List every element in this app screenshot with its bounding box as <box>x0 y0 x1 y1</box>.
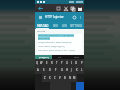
button[interactable]: G <box>59 66 64 74</box>
staticText: D <box>49 68 51 72</box>
button[interactable]: B <box>62 74 67 82</box>
staticText: HTTP Injector <box>45 15 64 19</box>
staticText: U <box>66 61 68 65</box>
staticText: H <box>66 68 68 72</box>
button[interactable]: R <box>49 59 54 66</box>
staticText: X <box>49 76 51 80</box>
button[interactable]: D <box>47 66 53 74</box>
staticText: [crlf][crlf] <box>39 56 49 59</box>
staticText: G <box>61 68 63 72</box>
button[interactable]: L <box>79 66 84 74</box>
button[interactable]: Help <box>71 14 77 20</box>
button[interactable]: Y <box>59 59 64 66</box>
staticText: T <box>56 61 58 65</box>
button[interactable]: Z <box>42 74 47 82</box>
staticText: A <box>37 68 39 72</box>
staticText: L <box>81 68 83 72</box>
button[interactable]: W <box>39 59 44 66</box>
button[interactable]: [crlf][crlf] <box>35 55 52 59</box>
button[interactable]: V <box>57 74 62 82</box>
staticText: [host_port] <box>38 37 50 40</box>
button[interactable]: A <box>35 66 41 74</box>
button[interactable]: T <box>54 59 59 66</box>
staticText: E <box>46 61 48 65</box>
button[interactable]: SSH <box>51 22 60 29</box>
staticText: Z <box>44 76 46 80</box>
staticText: LOG <box>62 24 68 28</box>
button[interactable]: S <box>41 66 47 74</box>
button[interactable]: J <box>69 66 74 74</box>
staticText: Payload <box>37 30 46 33</box>
button[interactable]: Select all <box>56 6 61 11</box>
staticText: S <box>43 68 45 72</box>
staticText: K <box>76 68 78 72</box>
staticText: C <box>54 76 56 80</box>
button[interactable]: Cut <box>63 6 68 11</box>
staticText: P <box>81 61 83 65</box>
button[interactable]: PAYLOAD <box>35 22 51 29</box>
staticText: crlf <box>58 56 62 59</box>
button[interactable]: C <box>52 74 57 82</box>
button[interactable]: K <box>74 66 79 74</box>
staticText: CONNECT [host_port] HTTP/1.1[crlf] <box>38 49 75 52</box>
staticText: Q <box>36 61 39 65</box>
button[interactable]: Copy <box>70 6 75 11</box>
staticText: B <box>64 76 66 80</box>
button[interactable]: U <box>64 59 69 66</box>
button[interactable]: Paste <box>77 6 82 11</box>
staticText: Host <box>74 56 79 59</box>
button[interactable]: H <box>64 66 69 74</box>
staticText: User-Agent: [ua][crlf][crlf] <box>38 45 65 48</box>
button[interactable]: M <box>72 74 77 82</box>
button[interactable]: X <box>47 74 52 82</box>
button[interactable]: I <box>69 59 74 66</box>
staticText: R <box>51 61 53 65</box>
button[interactable]: GET [host_port] HTTP/1.1[crlf]Host: <box>37 34 82 54</box>
button[interactable]: Menu <box>38 15 43 20</box>
staticText: I <box>71 61 72 65</box>
staticText: PAYLOAD <box>37 24 49 28</box>
staticText: [crlf]Connection: Keep-Alive[crlf] <box>38 41 72 44</box>
staticText: Y <box>61 61 63 65</box>
button[interactable]: O <box>74 59 79 66</box>
staticText: F <box>55 68 57 72</box>
button[interactable]: Back <box>37 5 43 11</box>
button[interactable]: LOG <box>60 22 69 29</box>
staticText: SETTINGS <box>70 24 83 28</box>
staticText: GET [host_port] HTTP/1.1[crlf]Host: <box>38 34 74 37</box>
button[interactable]: crlf <box>52 55 68 59</box>
staticText: J <box>71 68 72 72</box>
button[interactable] <box>76 82 84 90</box>
staticText: M <box>73 76 76 80</box>
button[interactable]: E <box>44 59 49 66</box>
button[interactable]: More options <box>78 15 82 19</box>
staticText: N <box>69 76 71 80</box>
staticText: O <box>75 61 78 65</box>
button[interactable]: SETTINGS <box>69 22 84 29</box>
staticText: SSH <box>53 24 58 28</box>
button[interactable]: F <box>53 66 59 74</box>
staticText: V <box>59 76 61 80</box>
staticText: W <box>40 61 43 65</box>
button[interactable]: Host <box>68 55 84 59</box>
button[interactable]: Q <box>35 59 39 66</box>
button[interactable]: N <box>67 74 72 82</box>
button[interactable]: P <box>79 59 84 66</box>
